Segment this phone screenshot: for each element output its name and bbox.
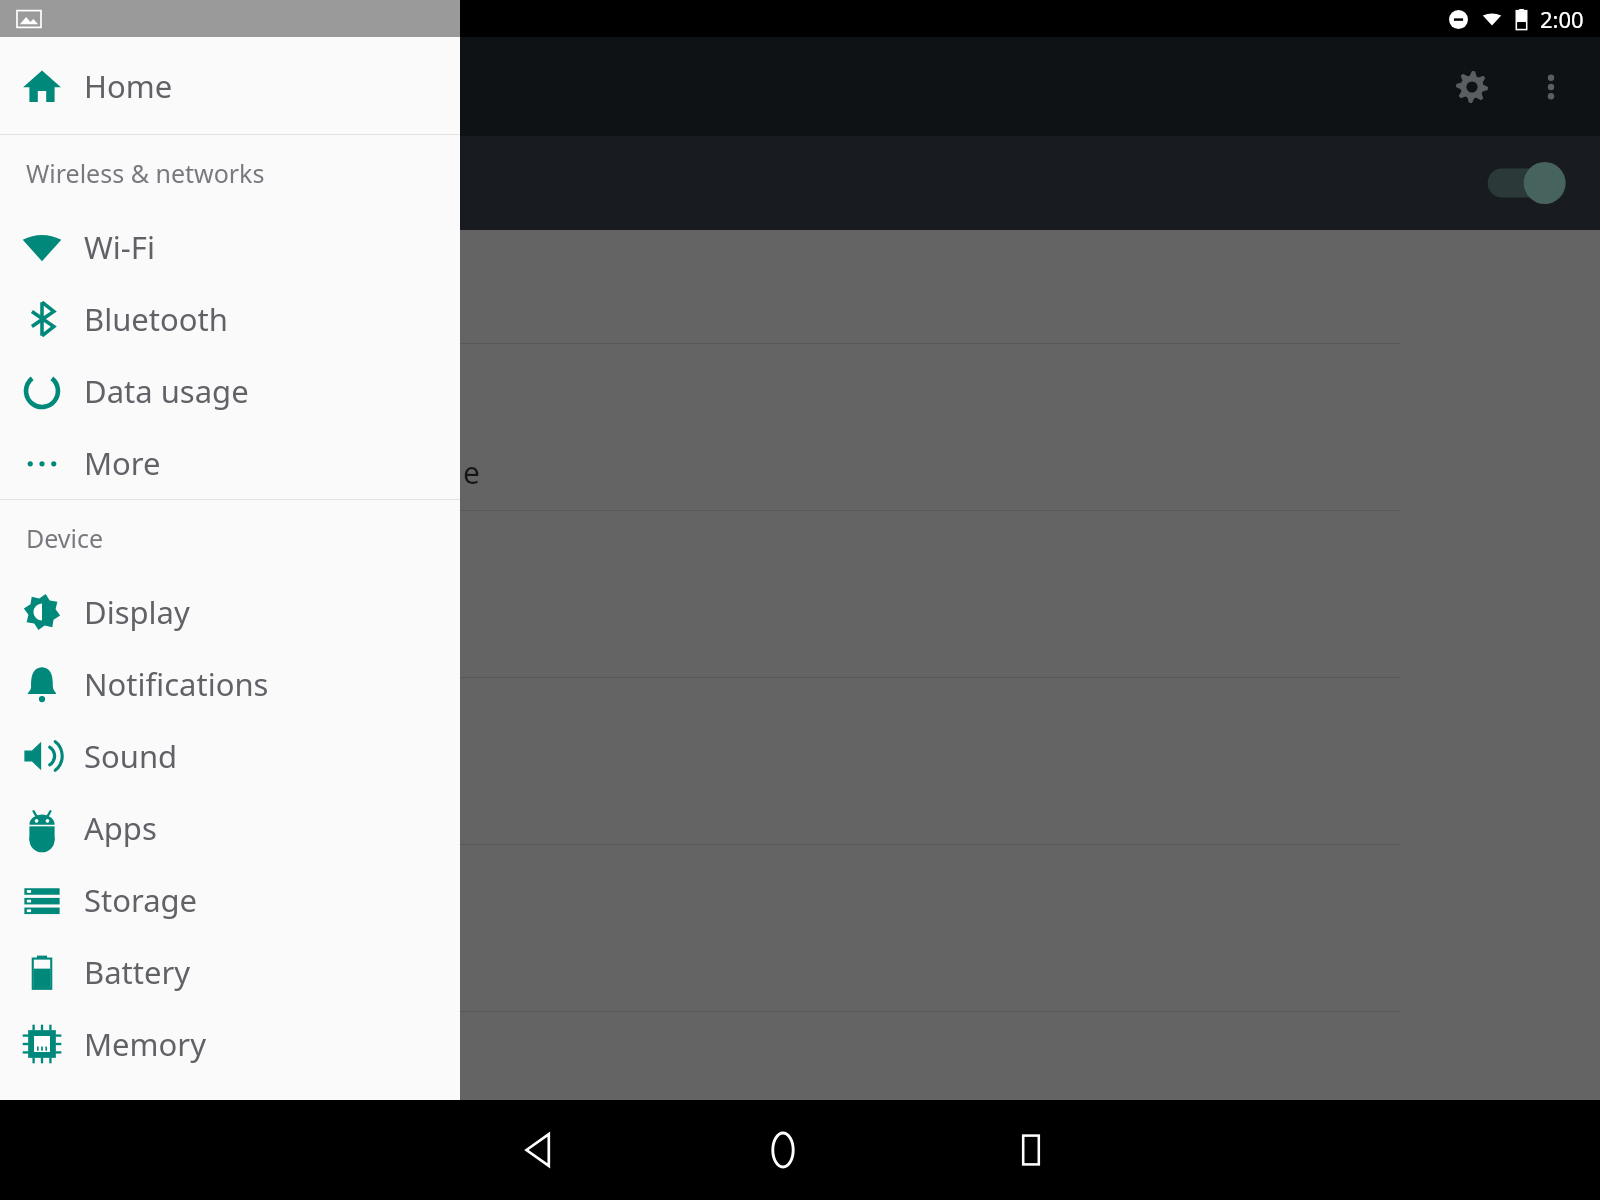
button[interactable]: Notifications bbox=[0, 648, 460, 720]
staticText: Bluetooth bbox=[84, 298, 228, 340]
staticText: Battery bbox=[84, 951, 191, 993]
staticText: Device bbox=[26, 521, 104, 555]
button[interactable]: Home bbox=[0, 37, 460, 134]
staticText: Wi-Fi bbox=[84, 226, 155, 268]
staticText: More bbox=[84, 442, 161, 484]
button[interactable]: More bbox=[0, 427, 460, 499]
button[interactable]: Data usage bbox=[0, 355, 460, 427]
button[interactable]: Wi-Fi bbox=[0, 211, 460, 283]
staticText: Display bbox=[84, 591, 190, 633]
button[interactable]: Memory bbox=[0, 1008, 460, 1080]
button[interactable]: Recent apps bbox=[981, 1100, 1081, 1200]
button[interactable]: Apps bbox=[0, 792, 460, 864]
staticText: Data usage bbox=[84, 370, 249, 412]
button[interactable]: Toggle bbox=[1486, 153, 1572, 213]
staticText: 2:00 bbox=[1540, 4, 1584, 34]
button[interactable]: Bluetooth bbox=[0, 283, 460, 355]
staticText: Home bbox=[84, 65, 173, 107]
button[interactable]: Back bbox=[488, 1100, 588, 1200]
staticText: Memory bbox=[84, 1023, 206, 1065]
button[interactable]: Storage bbox=[0, 864, 460, 936]
staticText: Notifications bbox=[84, 663, 269, 705]
button[interactable]: Home bbox=[733, 1100, 833, 1200]
button[interactable]: Settings bbox=[1430, 45, 1514, 129]
staticText: Sound bbox=[84, 735, 178, 777]
staticText: e bbox=[463, 452, 480, 493]
button[interactable]: Sound bbox=[0, 720, 460, 792]
staticText: Storage bbox=[84, 879, 198, 921]
button[interactable]: More options bbox=[1514, 50, 1588, 124]
button[interactable]: Battery bbox=[0, 936, 460, 1008]
staticText: Apps bbox=[84, 807, 157, 849]
button[interactable]: Display bbox=[0, 576, 460, 648]
staticText: Wireless & networks bbox=[26, 156, 265, 190]
